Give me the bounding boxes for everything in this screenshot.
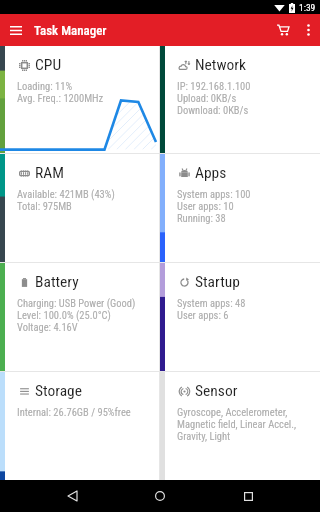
button[interactable]: RAM — [0, 154, 159, 262]
staticText: User apps: 10 — [177, 200, 234, 212]
staticText: Task Manager — [34, 23, 107, 38]
staticText: Gyroscope, Accelerometer, — [177, 406, 288, 418]
staticText: Storage — [35, 382, 83, 400]
staticText: CPU — [35, 56, 62, 74]
button[interactable]: Recent apps — [232, 480, 264, 512]
staticText: Internal: 26.76GB / 95%free — [17, 406, 131, 418]
staticText: System apps: 48 — [177, 297, 246, 309]
staticText: 1:39 — [299, 2, 316, 13]
staticText: Avg. Freq.: 1200MHz — [17, 92, 104, 104]
staticText: Level: 100.0% (25.0°C) — [17, 309, 111, 321]
button[interactable]: More options — [296, 18, 320, 42]
staticText: Charging: USB Power (Good) — [17, 297, 136, 309]
staticText: Available: 421MB (43%) — [17, 188, 115, 200]
staticText: Magnetic field, Linear Accel., — [177, 418, 297, 430]
button[interactable]: Startup — [160, 263, 320, 371]
staticText: Apps — [195, 164, 227, 182]
staticText: Download: 0KB/s — [177, 104, 249, 116]
button[interactable]: CPU — [0, 46, 159, 153]
button[interactable]: Home — [144, 480, 176, 512]
staticText: Network — [195, 56, 247, 74]
button[interactable]: Apps — [160, 154, 320, 262]
button[interactable]: Open navigation menu — [4, 18, 28, 42]
staticText: Startup — [195, 273, 240, 291]
button[interactable]: Sensor — [160, 372, 320, 480]
button[interactable]: Storage — [0, 372, 159, 480]
staticText: RAM — [35, 164, 64, 182]
staticText: Sensor — [195, 382, 238, 400]
staticText: Voltage: 4.16V — [17, 321, 78, 333]
button[interactable]: Battery — [0, 263, 159, 371]
staticText: IP: 192.168.1.100 — [177, 80, 251, 92]
staticText: User apps: 6 — [177, 309, 229, 321]
button[interactable]: Back — [56, 480, 88, 512]
staticText: Loading: 11% — [17, 80, 73, 92]
staticText: Running: 38 — [177, 212, 226, 224]
button[interactable]: Network — [160, 46, 320, 153]
staticText: Total: 975MB — [17, 200, 72, 212]
staticText: Battery — [35, 273, 79, 291]
button[interactable]: Shop — [270, 17, 296, 43]
staticText: Upload: 0KB/s — [177, 92, 237, 104]
staticText: Gravity, Light — [177, 430, 231, 442]
staticText: System apps: 100 — [177, 188, 251, 200]
